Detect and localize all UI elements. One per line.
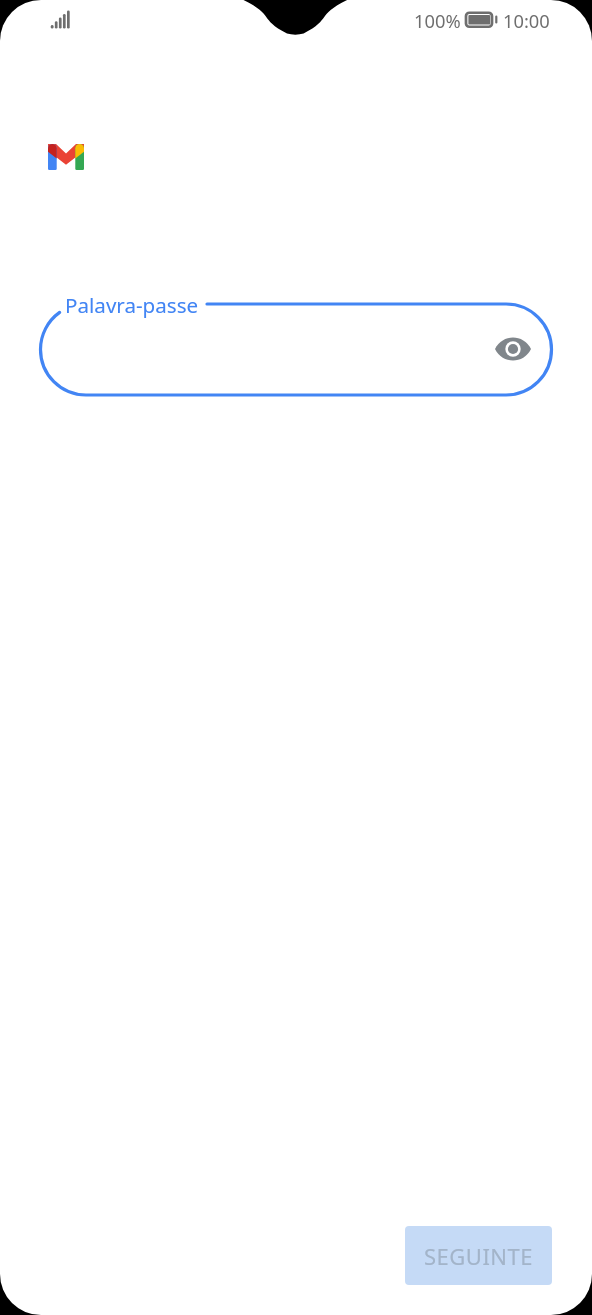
button[interactable]: SEGUINTE xyxy=(405,1226,552,1285)
staticText: 100% xyxy=(414,8,461,33)
staticText: 10:00 xyxy=(503,8,550,33)
button[interactable]: Show password xyxy=(489,325,537,373)
staticText: SEGUINTE xyxy=(424,1241,534,1271)
staticText: Palavra-passe xyxy=(65,291,199,319)
